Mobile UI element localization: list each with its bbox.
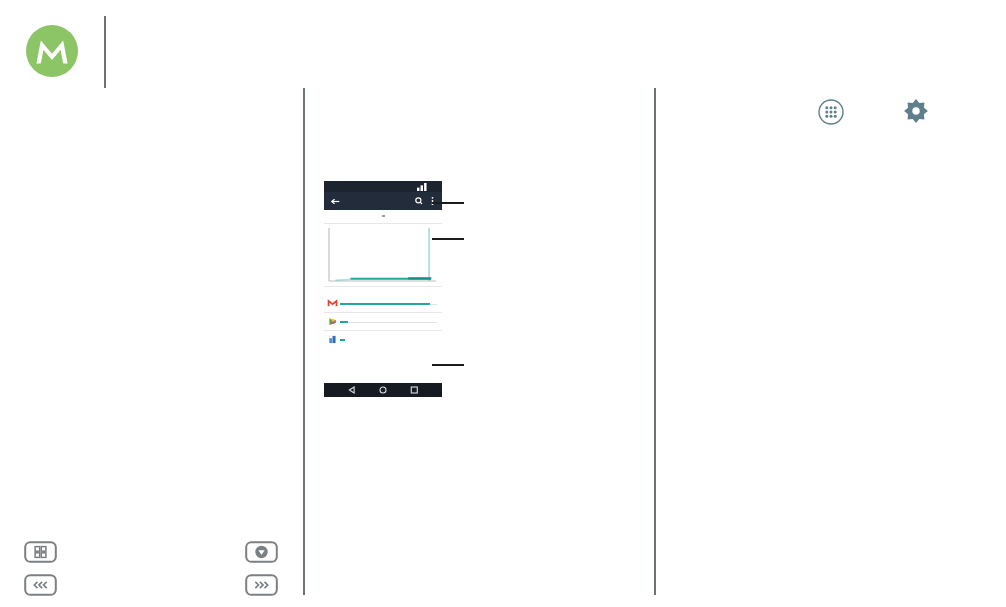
button[interactable] [324, 331, 442, 348]
button[interactable]: Settings [903, 98, 929, 124]
button[interactable] [324, 313, 442, 330]
button[interactable]: Menu [24, 541, 57, 563]
button[interactable]: Previous [24, 574, 57, 596]
button[interactable]: All apps [818, 99, 844, 125]
button[interactable]: Next [245, 574, 278, 596]
button[interactable] [324, 295, 442, 312]
button[interactable]: Motorola logo [26, 25, 78, 77]
button[interactable]: Download [245, 541, 278, 563]
